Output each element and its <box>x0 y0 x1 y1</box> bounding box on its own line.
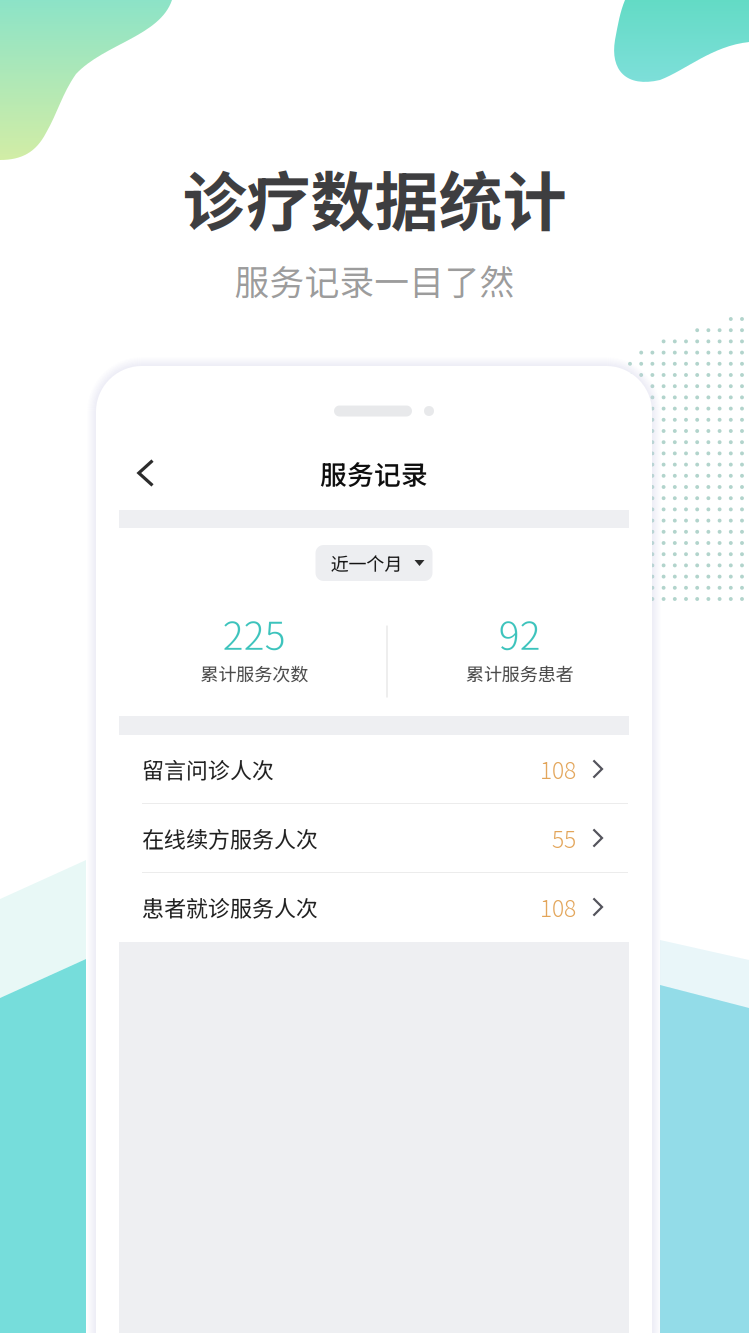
button[interactable]: Back <box>96 447 170 499</box>
button[interactable]: 患者就诊服务人次 <box>96 873 652 942</box>
staticText: 累计服务患者 <box>466 660 574 686</box>
staticText: 诊疗数据统计 <box>182 151 566 244</box>
button[interactable]: 在线续方服务人次 <box>96 804 652 873</box>
button[interactable]: 留言问诊人次 <box>96 735 652 804</box>
staticText: 108 <box>540 891 576 923</box>
staticText: 108 <box>540 753 576 785</box>
staticText: 服务记录一目了然 <box>234 255 514 305</box>
staticText: 55 <box>552 822 576 854</box>
button[interactable]: 近一个月 <box>315 545 432 581</box>
staticText: 患者就诊服务人次 <box>142 891 318 923</box>
staticText: 在线续方服务人次 <box>142 822 318 854</box>
staticText: 留言问诊人次 <box>142 753 274 785</box>
staticText: 92 <box>499 605 541 661</box>
staticText: 累计服务次数 <box>200 660 308 686</box>
staticText: 服务记录 <box>320 454 428 492</box>
staticText: 225 <box>223 605 286 661</box>
staticText: 近一个月 <box>330 550 402 576</box>
